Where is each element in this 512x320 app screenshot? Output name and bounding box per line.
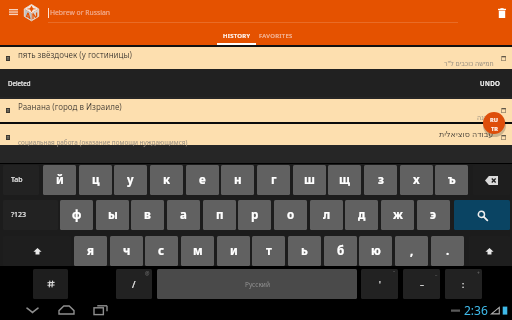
- staticText: –: [420, 279, 424, 290]
- button[interactable]: Home: [56, 299, 77, 320]
- button[interactable]: ф: [60, 200, 93, 230]
- staticText: м: [193, 243, 203, 259]
- staticText: Раанана (город в Израиле): [18, 101, 122, 112]
- button[interactable]: щ: [328, 165, 361, 195]
- staticText: с: [158, 243, 165, 259]
- staticText: ': [379, 279, 381, 290]
- staticText: ф: [72, 207, 82, 223]
- staticText: ш: [304, 172, 315, 188]
- button[interactable]: п: [203, 200, 236, 230]
- button[interactable]: г: [257, 165, 290, 195]
- staticText: .: [446, 243, 450, 259]
- button[interactable]: Clear history: [492, 3, 512, 23]
- staticText: ?123: [11, 210, 27, 220]
- button[interactable]: /: [116, 269, 152, 299]
- staticText: я: [87, 243, 94, 259]
- staticText: д: [358, 207, 366, 223]
- button[interactable]: и: [217, 236, 250, 266]
- button[interactable]: .: [431, 236, 464, 266]
- staticText: ч: [123, 243, 131, 259]
- staticText: г: [271, 172, 277, 188]
- button[interactable]: д: [345, 200, 378, 230]
- button[interactable]: Change keyboard: [33, 269, 68, 299]
- button[interactable]: й: [43, 165, 76, 195]
- staticText: у: [127, 172, 134, 188]
- button[interactable]: р: [238, 200, 271, 230]
- staticText: и: [230, 243, 238, 259]
- button[interactable]: с: [145, 236, 178, 266]
- staticText: רעננה: [477, 114, 494, 121]
- button[interactable]: FAVORITES: [258, 26, 294, 45]
- button[interactable]: в: [131, 200, 164, 230]
- button[interactable]: т: [252, 236, 285, 266]
- staticText: Deleted: [8, 79, 31, 87]
- button[interactable]: ш: [293, 165, 326, 195]
- staticText: в: [144, 207, 151, 223]
- button[interactable]: а: [167, 200, 200, 230]
- button[interactable]: я: [74, 236, 107, 266]
- staticText: б: [337, 243, 345, 259]
- button[interactable]: ?123: [3, 200, 58, 230]
- button[interactable]: Tab: [3, 165, 39, 195]
- button[interactable]: ж: [381, 200, 414, 230]
- staticText: р: [251, 207, 259, 223]
- staticText: л: [323, 207, 331, 223]
- staticText: Русский: [245, 280, 270, 289]
- button[interactable]: б: [324, 236, 357, 266]
- button[interactable]: Swap translation direction RU TR: [483, 112, 505, 134]
- button[interactable]: з: [364, 165, 397, 195]
- button[interactable]: у: [114, 165, 147, 195]
- staticText: п: [216, 207, 224, 223]
- button[interactable]: Recent apps: [90, 299, 111, 320]
- staticText: @: [145, 270, 150, 277]
- button[interactable]: э: [417, 200, 450, 230]
- button[interactable]: Shift: [3, 236, 71, 266]
- staticText: Hebrew or Russian: [50, 8, 110, 17]
- staticText: пять звёздочек (у гостиницы): [18, 49, 132, 60]
- button[interactable]: Русский: [157, 269, 357, 299]
- staticText: UNDO: [480, 79, 501, 87]
- staticText: ъ: [448, 172, 456, 188]
- button[interactable]: ы: [96, 200, 129, 230]
- button[interactable]: UNDO: [480, 79, 501, 87]
- staticText: з: [378, 172, 384, 188]
- staticText: э: [430, 207, 437, 223]
- button[interactable]: Shift: [469, 236, 510, 266]
- button[interactable]: HISTORY: [217, 26, 256, 45]
- button[interactable]: ю: [359, 236, 392, 266]
- button[interactable]: к: [150, 165, 183, 195]
- button[interactable]: :: [445, 269, 482, 299]
- button[interactable]: е: [186, 165, 219, 195]
- button[interactable]: Deleted: [0, 69, 512, 97]
- staticText: ˝: [393, 270, 396, 277]
- button[interactable]: м: [181, 236, 214, 266]
- button[interactable]: Hide keyboard: [22, 299, 43, 320]
- staticText: :: [462, 279, 465, 290]
- staticText: е: [199, 172, 206, 188]
- button[interactable]: ь: [288, 236, 321, 266]
- staticText: עבודה סוציאלית: [439, 128, 494, 139]
- button[interactable]: ъ: [435, 165, 468, 195]
- staticText: _: [435, 270, 438, 277]
- button[interactable]: ч: [110, 236, 143, 266]
- staticText: +: [477, 270, 480, 277]
- button[interactable]: х: [400, 165, 433, 195]
- staticText: ц: [92, 172, 100, 188]
- button[interactable]: Backspace: [473, 165, 510, 195]
- staticText: ,: [410, 243, 414, 259]
- staticText: HISTORY: [223, 32, 251, 40]
- button[interactable]: Menu: [3, 2, 23, 22]
- button[interactable]: л: [310, 200, 343, 230]
- button[interactable]: –: [403, 269, 440, 299]
- staticText: ю: [371, 243, 381, 259]
- staticText: а: [180, 207, 187, 223]
- button[interactable]: ,: [395, 236, 428, 266]
- staticText: х: [413, 172, 420, 188]
- staticText: к: [163, 172, 171, 188]
- button[interactable]: о: [274, 200, 307, 230]
- button[interactable]: ': [361, 269, 398, 299]
- button[interactable]: ц: [79, 165, 112, 195]
- button[interactable]: н: [221, 165, 254, 195]
- staticText: ь: [301, 243, 308, 259]
- button[interactable]: Search: [454, 200, 510, 230]
